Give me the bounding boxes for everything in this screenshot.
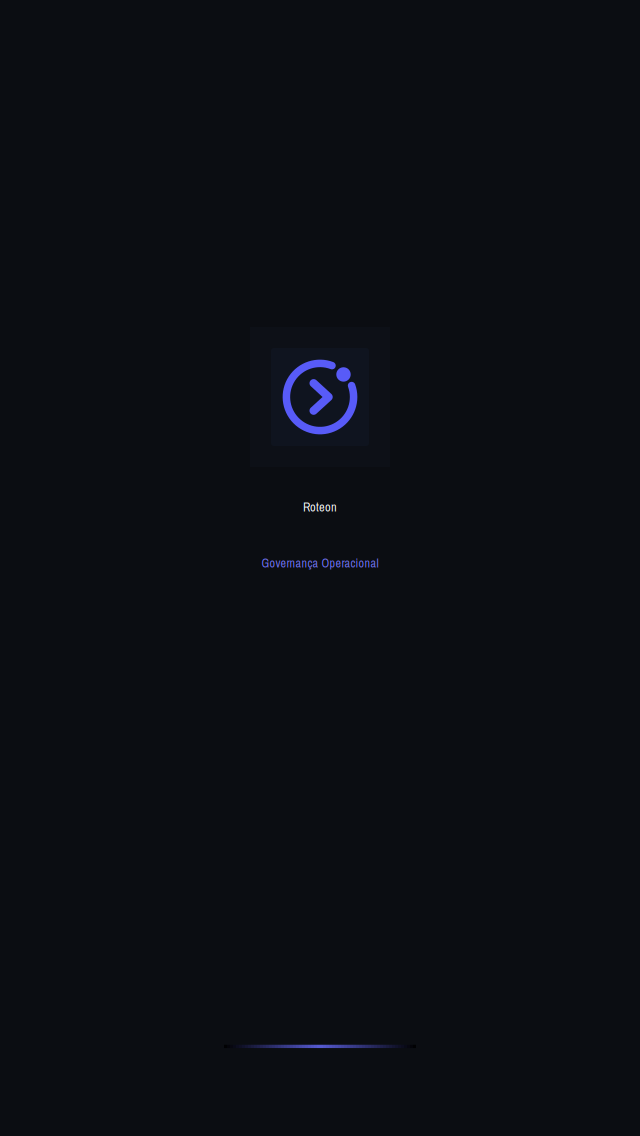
staticText: Roteon (303, 499, 337, 515)
staticText: Governança Operacional (261, 555, 378, 571)
